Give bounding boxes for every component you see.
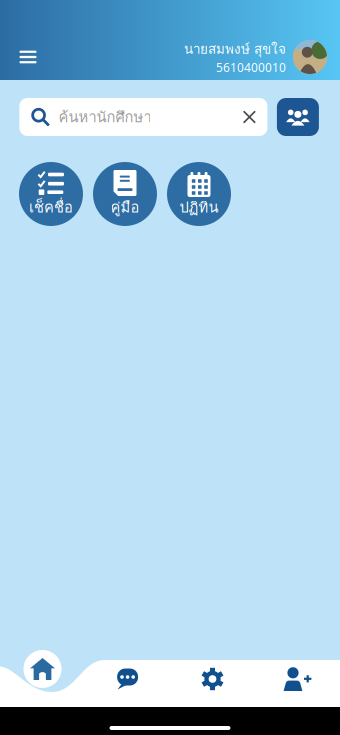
staticText: ค้นหานักศึกษา — [58, 106, 151, 128]
staticText: คู่มือ — [110, 196, 139, 219]
button[interactable]: Messages — [85, 655, 170, 703]
button[interactable]: Profile — [286, 40, 327, 74]
staticText: ปฏิทิน — [179, 196, 218, 219]
button[interactable]: เช็คชื่อ — [19, 162, 83, 226]
button[interactable]: ปฏิทิน — [167, 162, 231, 226]
staticText: นายสมพงษ์ สุขใจ — [184, 39, 286, 59]
button[interactable]: Menu — [13, 44, 43, 70]
button[interactable]: คู่มือ — [93, 162, 157, 226]
staticText: 5610400010 — [216, 59, 286, 75]
button[interactable]: Add contact — [255, 655, 340, 703]
button[interactable]: Settings — [170, 655, 255, 703]
button[interactable]: Home — [0, 655, 85, 703]
button[interactable]: Clear search — [236, 104, 262, 130]
button[interactable]: Groups — [277, 98, 319, 136]
staticText: เช็คชื่อ — [29, 196, 73, 219]
